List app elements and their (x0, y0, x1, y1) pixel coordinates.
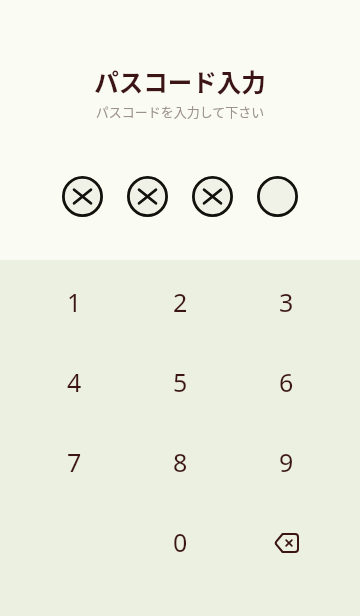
button[interactable]: 3 (233, 262, 339, 342)
staticText: 6 (279, 365, 294, 399)
staticText: パスコードを入力して下さい (0, 102, 360, 121)
button[interactable]: 4 (21, 342, 127, 422)
staticText: 8 (173, 445, 188, 479)
staticText: 2 (173, 285, 188, 319)
button[interactable]: 7 (21, 422, 127, 502)
button[interactable]: 5 (127, 342, 233, 422)
button[interactable]: 1 (21, 262, 127, 342)
staticText: 1 (67, 285, 82, 319)
button[interactable]: 2 (127, 262, 233, 342)
button[interactable]: 8 (127, 422, 233, 502)
staticText: 5 (173, 365, 188, 399)
staticText: 3 (279, 285, 294, 319)
button[interactable]: Delete (233, 502, 339, 582)
staticText: 7 (67, 445, 82, 479)
staticText: 4 (67, 365, 82, 399)
staticText: 0 (173, 525, 188, 559)
button[interactable]: 9 (233, 422, 339, 502)
button[interactable]: 0 (127, 502, 233, 582)
button[interactable]: 6 (233, 342, 339, 422)
staticText: パスコード入力 (0, 64, 360, 99)
staticText: 9 (279, 445, 294, 479)
